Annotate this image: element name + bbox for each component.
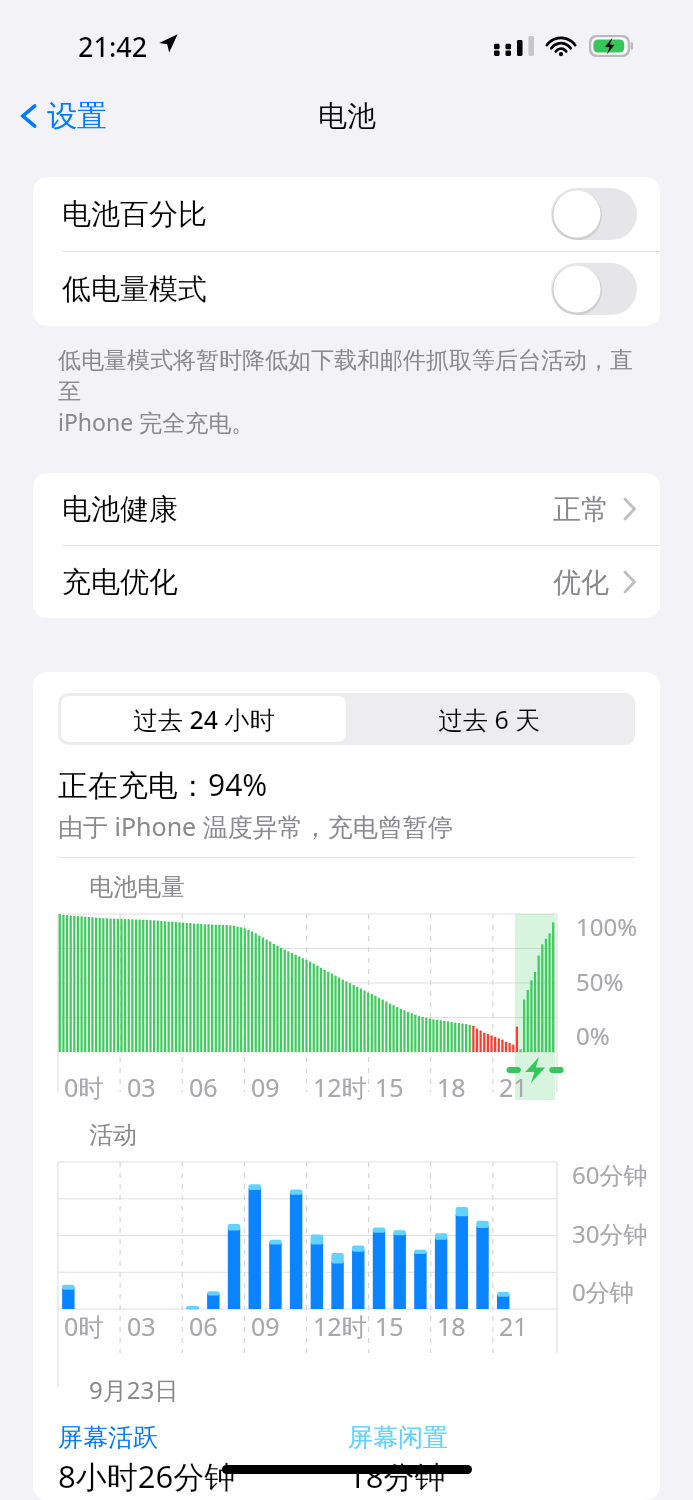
staticText: 设置 — [47, 97, 107, 135]
staticText: 0分钟 — [572, 1275, 634, 1308]
staticText: 50% — [576, 965, 624, 998]
staticText: 60分钟 — [572, 1158, 648, 1191]
staticText: 优化 — [553, 565, 609, 600]
staticText: 0% — [576, 1019, 610, 1052]
staticText: iPhone 完全充电。 — [58, 406, 255, 437]
staticText: 电池百分比 — [62, 196, 207, 233]
staticText: 屏幕活跃 — [58, 1422, 158, 1453]
staticText: 9月23日 — [89, 1373, 179, 1406]
button[interactable]: Toggle — [551, 188, 637, 240]
staticText: 屏幕闲置 — [348, 1422, 448, 1453]
staticText: 0时 — [64, 1309, 104, 1343]
button[interactable]: 设置 — [14, 93, 113, 139]
staticText: 12时 — [313, 1309, 367, 1343]
staticText: 正在充电：94% — [58, 764, 268, 805]
button[interactable]: 过去 24 小时 — [61, 696, 346, 742]
button[interactable]: 电池百分比 — [33, 177, 660, 251]
staticText: 18分钟 — [348, 1455, 446, 1497]
staticText: 06 — [189, 1070, 218, 1104]
button[interactable]: Toggle — [551, 263, 637, 315]
button[interactable]: 过去 6 天 — [346, 696, 632, 742]
staticText: 充电优化 — [62, 564, 178, 601]
staticText: 电池电量 — [89, 872, 185, 902]
staticText: 电池 — [318, 98, 376, 135]
staticText: 15 — [375, 1309, 404, 1343]
staticText: 30分钟 — [572, 1217, 648, 1250]
staticText: 活动 — [89, 1120, 137, 1150]
staticText: 06 — [189, 1309, 218, 1343]
staticText: 09 — [251, 1309, 280, 1343]
staticText: 低电量模式 — [62, 271, 207, 308]
staticText: 电池健康 — [62, 491, 178, 528]
button[interactable]: 电池健康 — [33, 473, 660, 545]
staticText: 21 — [499, 1309, 528, 1343]
staticText: 12时 — [313, 1070, 367, 1104]
staticText: 低电量模式将暂时降低如下载和邮件抓取等后台活动，直至 — [58, 346, 649, 406]
staticText: 21:42 — [78, 28, 148, 65]
staticText: 100% — [576, 910, 638, 943]
staticText: 8小时26分钟 — [58, 1455, 236, 1497]
staticText: 过去 6 天 — [438, 702, 541, 736]
staticText: 过去 24 小时 — [133, 702, 275, 736]
staticText: 由于 iPhone 温度异常，充电曾暂停 — [58, 809, 453, 843]
button[interactable]: 低电量模式 — [33, 252, 660, 326]
staticText: 03 — [127, 1309, 156, 1343]
button[interactable]: 充电优化 — [33, 546, 660, 618]
staticText: 0时 — [64, 1070, 104, 1104]
staticText: 18 — [437, 1309, 466, 1343]
staticText: 21 — [499, 1070, 528, 1104]
staticText: 15 — [375, 1070, 404, 1104]
staticText: 09 — [251, 1070, 280, 1104]
staticText: 03 — [127, 1070, 156, 1104]
staticText: 正常 — [553, 492, 609, 527]
staticText: 18 — [437, 1070, 466, 1104]
